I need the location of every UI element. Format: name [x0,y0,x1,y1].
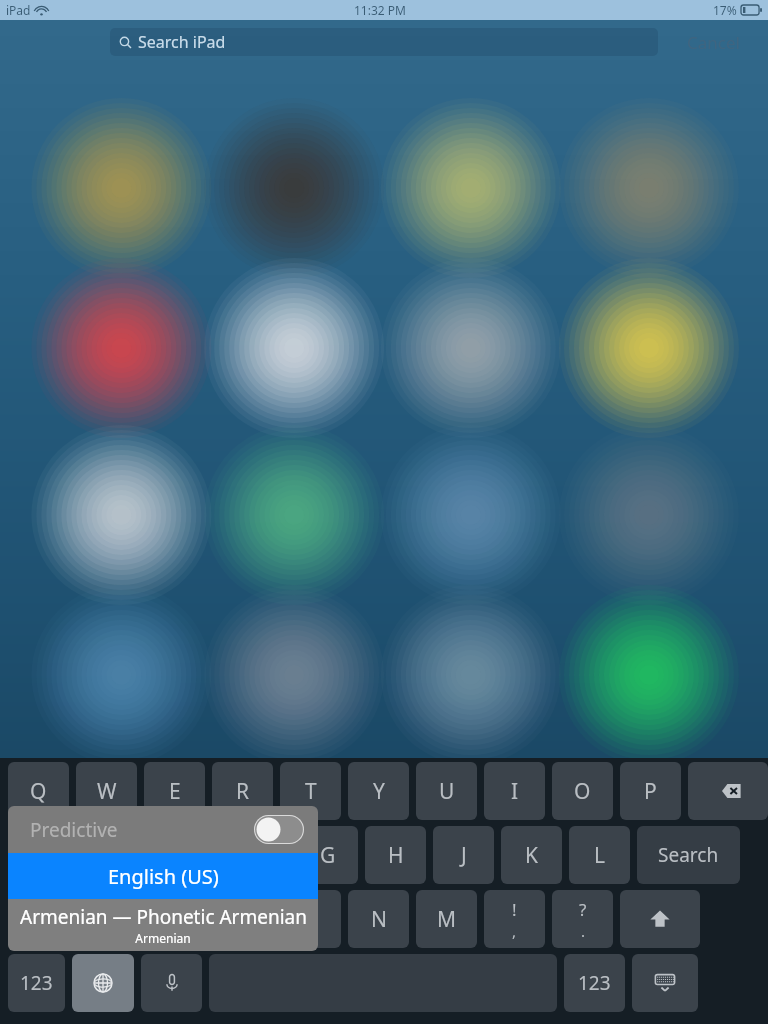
button[interactable]: Armenian — Phonetic Armenian [8,899,318,951]
button[interactable]: Predictive [8,806,318,853]
button[interactable]: M [416,890,477,948]
staticText: L [594,841,606,870]
button[interactable]: P [620,762,681,820]
staticText: F [254,841,265,870]
button[interactable]: T [280,762,341,820]
staticText: Armenian — Phonetic Armenian [20,904,307,930]
button[interactable]: G [297,826,358,884]
staticText: C [168,905,182,934]
staticText: O [574,777,591,806]
staticText: 123 [578,970,611,996]
button[interactable]: 123 [8,954,65,1012]
button[interactable]: Predictive toggle [254,815,304,844]
staticText: , [512,921,517,941]
staticText: iPad [6,2,31,18]
button[interactable]: Q [8,762,69,820]
button[interactable]: Hide keyboard [632,954,698,1012]
button[interactable]: English (US) [8,853,318,899]
staticText: English (US) [108,863,219,890]
button[interactable]: Next keyboard [72,954,134,1012]
button[interactable]: Search [637,826,740,884]
staticText: Search [658,842,719,868]
staticText: ? [579,898,587,921]
staticText: H [388,841,404,870]
button[interactable]: O [552,762,613,820]
staticText: X [100,905,113,934]
staticText: Search iPad [138,31,226,53]
staticText: ! [512,898,517,921]
button[interactable]: D [161,826,222,884]
button[interactable]: R [212,762,273,820]
button[interactable]: A [25,826,86,884]
staticText: Cancel [687,31,740,54]
staticText: K [525,841,538,870]
button[interactable]: Z [8,890,69,948]
staticText: P [644,777,657,806]
staticText: N [371,905,387,934]
button[interactable]: Dictation [141,954,202,1012]
staticText: V [236,905,249,934]
button[interactable]: N [348,890,409,948]
button[interactable]: Backspace [688,762,768,820]
staticText: D [184,841,200,870]
staticText: Predictive [30,817,118,843]
button[interactable]: H [365,826,426,884]
staticText: U [439,777,455,806]
staticText: S [118,841,130,870]
button[interactable]: W [76,762,137,820]
staticText: Z [32,905,45,934]
staticText: E [169,777,181,806]
staticText: J [461,841,467,870]
button[interactable]: 123 [564,954,625,1012]
button[interactable]: C [144,890,205,948]
button[interactable]: ! [484,890,545,948]
staticText: A [49,841,63,870]
staticText: R [236,777,250,806]
staticText: Q [30,777,47,806]
staticText: Y [373,777,385,806]
button[interactable]: Search iPad [110,28,658,56]
staticText: W [97,777,117,806]
staticText: G [320,841,336,870]
staticText: T [305,777,317,806]
button[interactable]: U [416,762,477,820]
staticText: I [511,777,519,806]
staticText: 11:32 PM [354,2,406,18]
button[interactable]: ? [552,890,613,948]
button[interactable]: S [93,826,154,884]
button[interactable]: J [433,826,494,884]
staticText: 123 [20,970,53,996]
staticText: Armenian [135,930,191,946]
button[interactable]: E [144,762,205,820]
button[interactable]: I [484,762,545,820]
staticText: 17% [713,2,737,18]
button[interactable]: L [569,826,630,884]
staticText: B [304,905,318,934]
button[interactable]: Shift [620,890,700,948]
button[interactable]: V [212,890,273,948]
staticText: M [437,905,457,934]
button[interactable]: B [280,890,341,948]
button[interactable]: F [229,826,290,884]
button[interactable]: Y [348,762,409,820]
button[interactable]: X [76,890,137,948]
button[interactable]: K [501,826,562,884]
staticText: . [581,921,586,941]
